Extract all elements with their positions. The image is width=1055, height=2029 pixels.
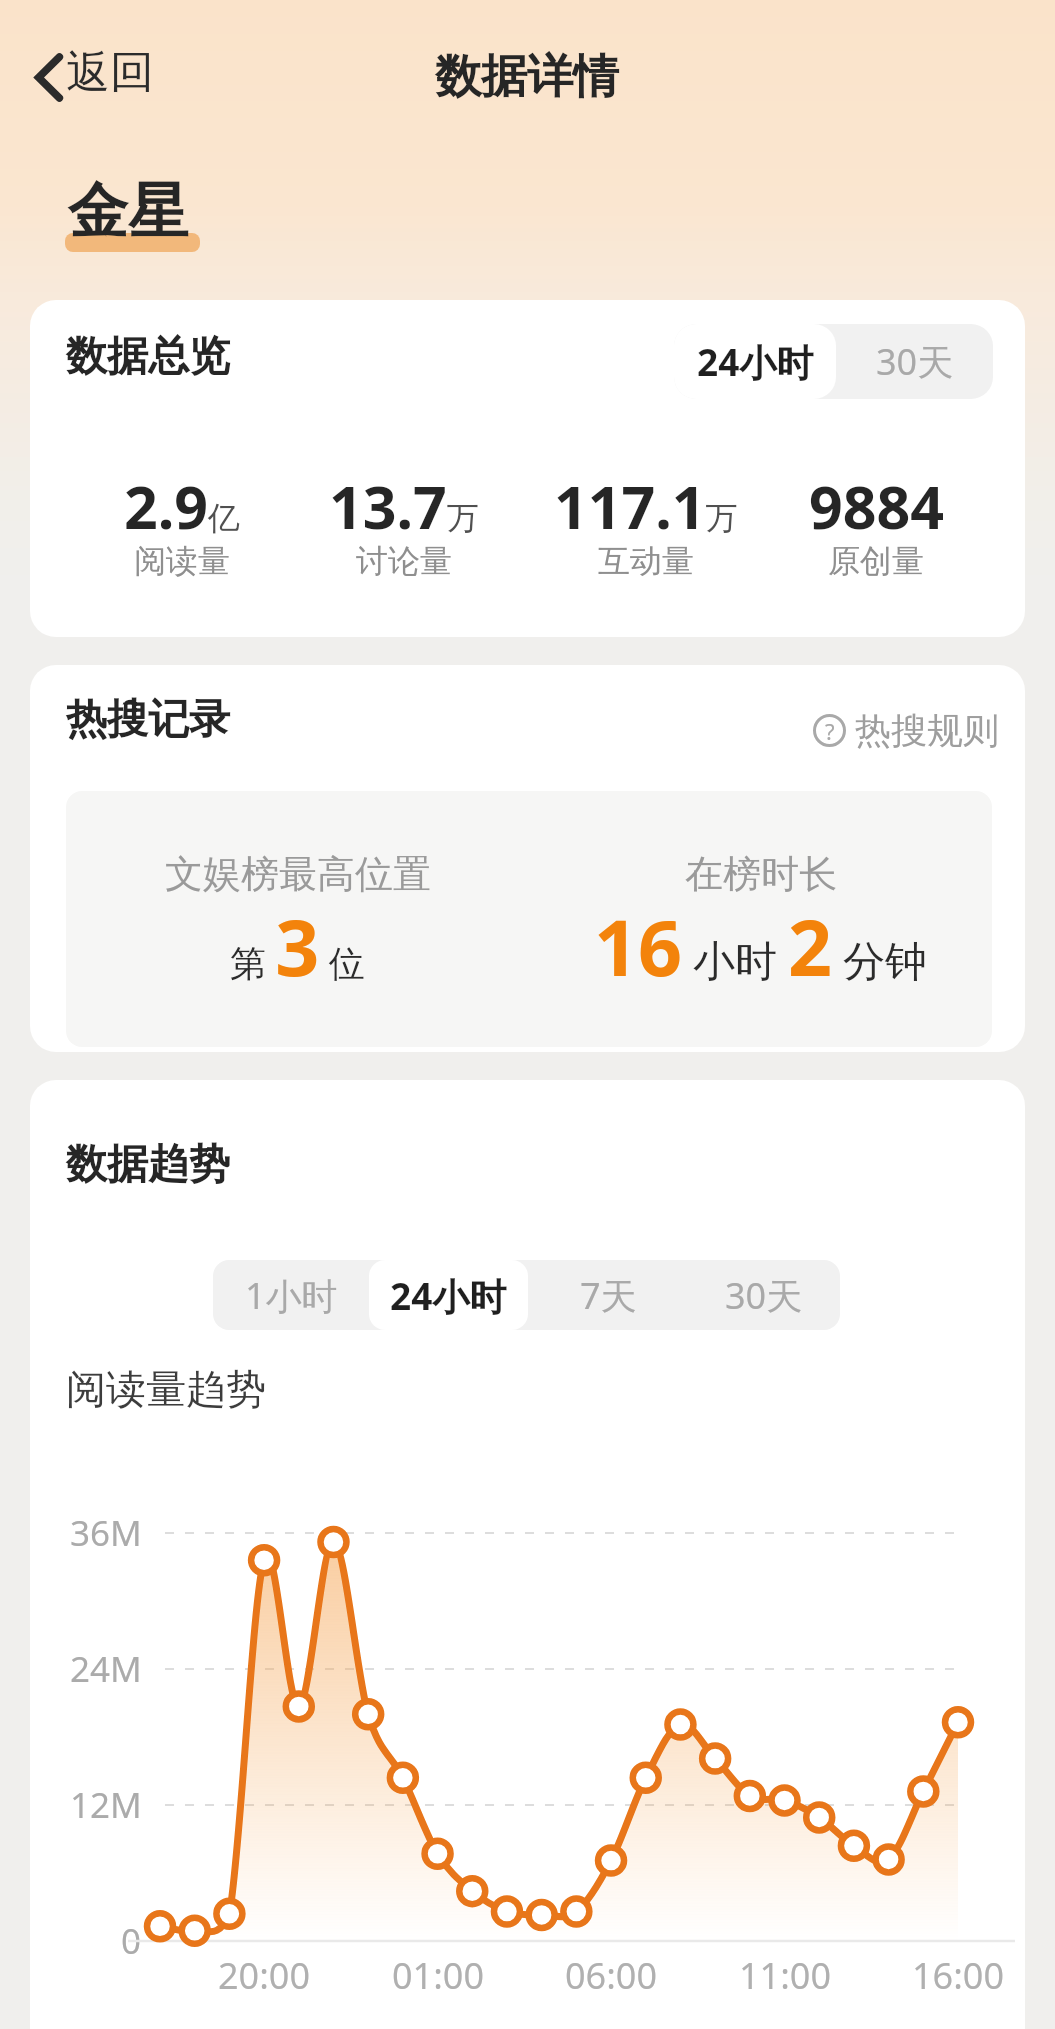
staticText: 数据趋势 [66, 1139, 230, 1191]
staticText: 返回 [66, 45, 154, 100]
staticText: 24小时 [697, 336, 814, 387]
staticText: 热搜规则 [855, 708, 999, 753]
staticText: 12M [70, 1781, 142, 1829]
staticText: 0 [121, 1917, 142, 1965]
staticText: 阅读量 [134, 541, 230, 581]
staticText: 24小时 [390, 1270, 507, 1321]
staticText: 117.1万 [554, 466, 738, 546]
staticText: 20:00 [218, 1951, 311, 2000]
staticText: 数据详情 [435, 48, 619, 106]
staticText: 互动量 [598, 541, 694, 581]
staticText: 金星 [68, 174, 188, 250]
staticText: 24M [70, 1645, 142, 1693]
staticText: 01:00 [392, 1951, 485, 2000]
staticText: 16:00 [912, 1951, 1005, 2000]
staticText: ? [825, 716, 835, 746]
staticText: 热搜记录 [66, 694, 230, 746]
staticText: 讨论量 [356, 541, 452, 581]
staticText: 30天 [725, 1271, 803, 1320]
staticText: 2.9亿 [124, 466, 241, 546]
staticText: 13.7万 [329, 466, 479, 546]
staticText: 11:00 [739, 1951, 832, 2000]
staticText: 06:00 [565, 1951, 658, 2000]
staticText: 阅读量趋势 [66, 1364, 266, 1414]
staticText: 16 小时 2 分钟 [594, 894, 927, 999]
staticText: 原创量 [828, 541, 924, 581]
staticText: 36M [70, 1509, 142, 1557]
staticText: 文娱榜最高位置 [165, 850, 431, 898]
staticText: 第 3 位 [230, 894, 365, 999]
staticText: 数据总览 [66, 331, 230, 383]
staticText: 9884 [809, 466, 944, 546]
staticText: 1小时 [245, 1271, 338, 1320]
staticText: 在榜时长 [685, 850, 837, 898]
staticText: 7天 [580, 1271, 637, 1320]
staticText: 30天 [876, 337, 954, 386]
